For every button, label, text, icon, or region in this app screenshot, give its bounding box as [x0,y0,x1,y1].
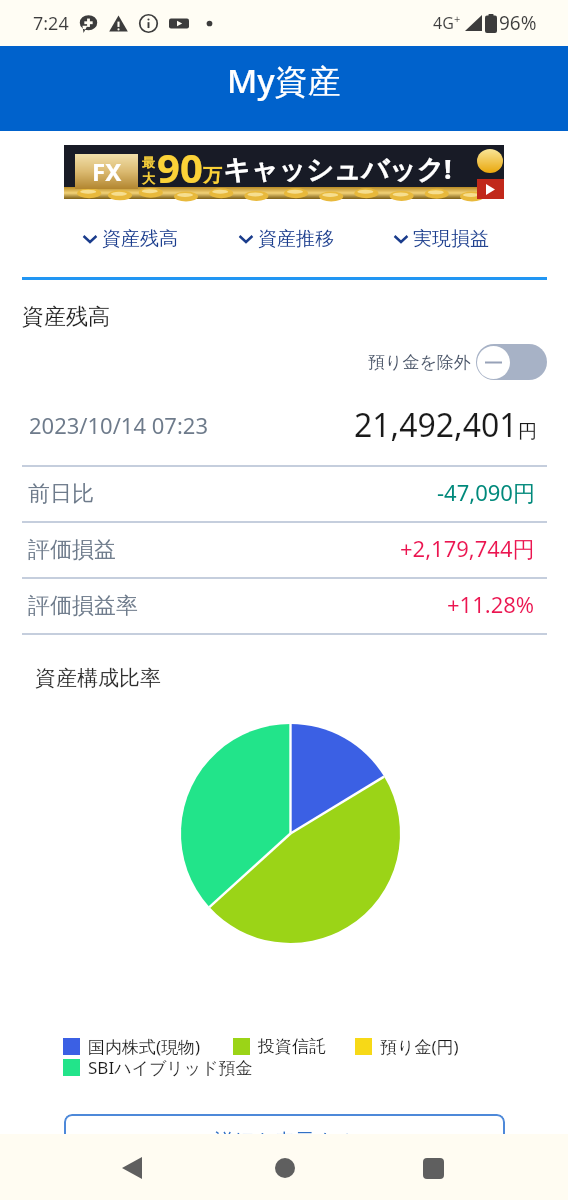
staticText: 国内株式(現物) [88,1035,201,1058]
button[interactable]: Back [84,1134,179,1200]
button[interactable]: 前日比 [0,467,568,521]
staticText: 21,492,401 [354,403,518,447]
button[interactable]: Home [237,1134,332,1200]
staticText: 資産残高 [102,227,178,251]
button[interactable]: 資産推移 [238,221,335,257]
staticText: 資産構成比率 [35,665,161,691]
staticText: 90 [157,140,203,194]
staticText: 預り金(円) [380,1035,459,1058]
button[interactable]: 預り金を除外 [368,344,547,380]
button[interactable]: 評価損益 [0,523,568,577]
staticText: +2,179,744円 [400,533,535,563]
button[interactable]: 詳細を表示する [64,1114,505,1169]
button[interactable]: SBIハイブリッド預金 [63,1056,253,1079]
staticText: SBIハイブリッド預金 [88,1056,253,1079]
button[interactable]: Recent apps [386,1134,481,1200]
staticText: + [454,11,461,26]
staticText: キャッシュバック! [223,150,452,187]
staticText: 資産残高 [22,303,110,331]
staticText: 投資信託 [258,1036,326,1057]
staticText: 預り金を除外 [368,352,471,373]
button[interactable]: 実現損益 [393,221,490,257]
staticText: FX [92,155,122,188]
staticText: 実現損益 [413,227,489,251]
staticText: 万 [203,164,222,188]
staticText: My資産 [227,58,341,103]
button[interactable]: FX 最大90万円キャッシュバック 広告 [64,145,504,199]
staticText: 2023/10/14 07:23 [29,410,208,440]
staticText: 7:24 [33,11,69,36]
staticText: 大 [142,170,155,186]
staticText: 詳細を表示する [214,1129,356,1154]
staticText: 評価損益 [28,536,116,564]
staticText: 96% [499,10,537,36]
staticText: -47,090円 [437,477,535,507]
staticText: 円 [518,420,537,444]
button[interactable]: 投資信託 [233,1036,326,1057]
button[interactable]: 預り金(円) [355,1035,459,1058]
staticText: 最 [142,154,155,170]
staticText: 評価損益率 [28,592,138,620]
button[interactable]: 評価損益率 [0,579,568,633]
button[interactable]: 国内株式(現物) [63,1035,201,1058]
staticText: 4G [433,12,454,34]
staticText: +11.28% [447,589,535,619]
button[interactable]: 資産残高 [82,221,179,257]
staticText: 資産推移 [258,227,334,251]
staticText: 前日比 [28,480,94,508]
